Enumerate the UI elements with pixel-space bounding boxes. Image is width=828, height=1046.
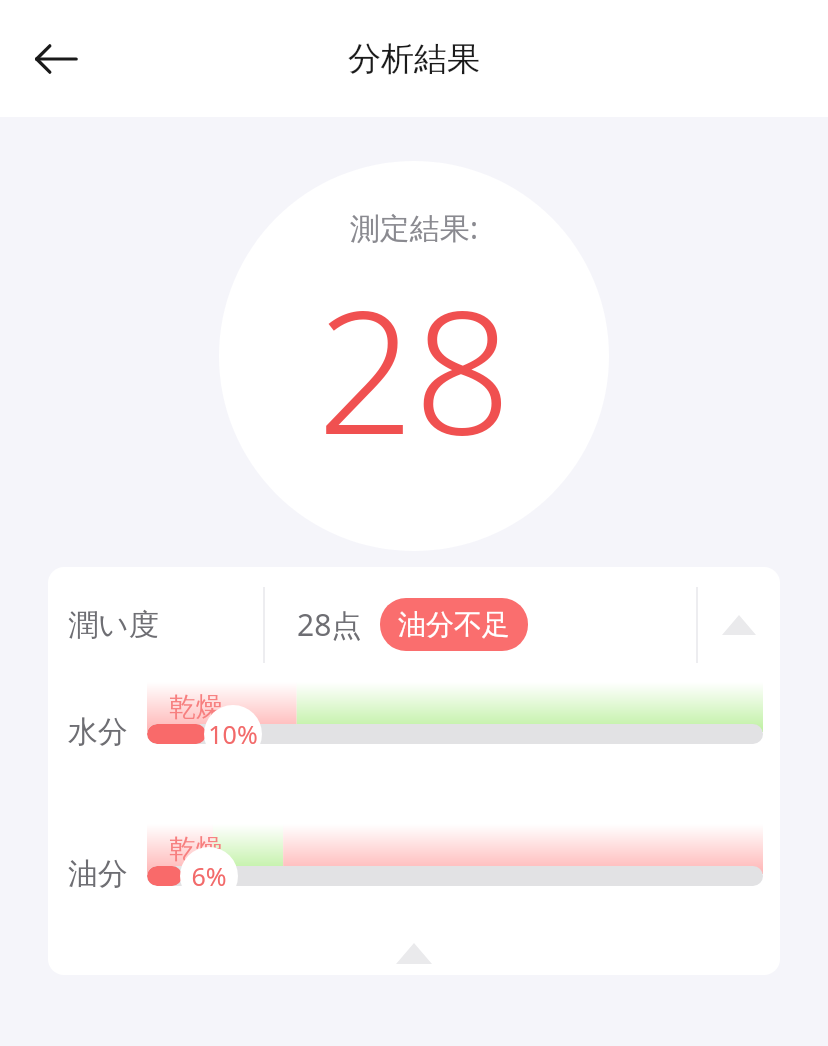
- staticText: 28点: [297, 604, 362, 645]
- staticText: 潤い度: [68, 606, 159, 644]
- staticText: 乾燥: [169, 832, 223, 866]
- button[interactable]: 潤い度: [48, 567, 780, 682]
- staticText: 10%: [208, 717, 258, 751]
- staticText: 水分: [68, 713, 128, 751]
- button[interactable]: Back: [20, 23, 92, 95]
- staticText: 油分: [68, 855, 128, 893]
- staticText: 分析結果: [348, 38, 480, 80]
- button[interactable]: Collapse: [698, 575, 780, 675]
- staticText: 6%: [191, 859, 227, 893]
- staticText: 乾燥: [169, 690, 223, 724]
- staticText: 油分不足: [398, 607, 510, 642]
- staticText: 測定結果:: [350, 207, 479, 248]
- staticText: 28: [317, 252, 512, 484]
